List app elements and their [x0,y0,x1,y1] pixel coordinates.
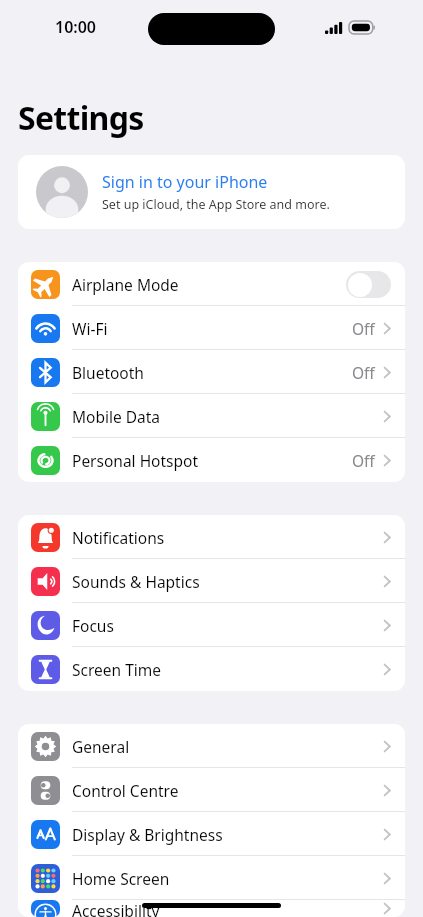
button[interactable]: Sounds & Haptics [18,559,405,603]
staticText: Display & Brightness [72,824,223,845]
staticText: Bluetooth [72,362,144,383]
staticText: Wi-Fi [72,318,108,339]
staticText: Focus [72,615,114,636]
button[interactable]: Airplane Mode [18,262,405,306]
staticText: 10:00 [55,16,97,38]
staticText: Off [352,362,375,383]
staticText: Off [352,318,375,339]
button[interactable]: Notifications [18,515,405,559]
staticText: Off [352,450,375,471]
staticText: Set up iCloud, the App Store and more. [102,196,330,213]
staticText: Settings [18,96,144,140]
staticText: General [72,736,130,757]
button[interactable]: General [18,724,405,768]
staticText: Accessibility [72,900,160,917]
staticText: Airplane Mode [72,274,179,295]
staticText: Sounds & Haptics [72,571,200,592]
button[interactable]: Focus [18,603,405,647]
button[interactable]: Screen Time [18,647,405,691]
staticText: Mobile Data [72,406,161,427]
button[interactable]: Accessibility [18,900,405,917]
staticText: Personal Hotspot [72,450,199,471]
button[interactable]: Display & Brightness [18,812,405,856]
staticText: Notifications [72,527,165,548]
button[interactable]: Control Centre [18,768,405,812]
button[interactable]: Wi-Fi [18,306,405,350]
button[interactable]: Airplane Mode toggle, off [346,271,391,298]
staticText: Screen Time [72,659,161,680]
staticText: Control Centre [72,780,179,801]
button[interactable]: Bluetooth [18,350,405,394]
staticText: Home Screen [72,868,170,889]
button[interactable]: Sign in to your iPhone [18,155,405,229]
staticText: Sign in to your iPhone [102,171,268,193]
button[interactable]: Personal Hotspot [18,438,405,482]
button[interactable]: Mobile Data [18,394,405,438]
button[interactable]: Home Screen [18,856,405,900]
